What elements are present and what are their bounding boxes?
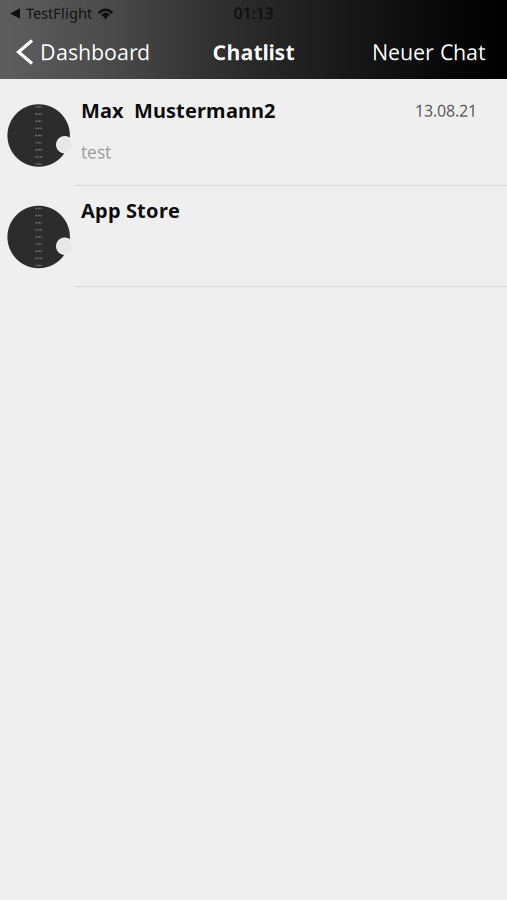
staticText: Neuer Chat — [372, 38, 486, 66]
staticText: Max Mustermann2 — [81, 97, 275, 124]
staticText: Chatlist — [212, 38, 294, 66]
staticText: 01:13 — [233, 2, 273, 24]
staticText: Dashboard — [40, 38, 150, 66]
button[interactable]: Neuer Chat — [372, 25, 507, 78]
staticText: App Store — [81, 197, 180, 224]
staticText: test — [81, 140, 111, 163]
button[interactable]: Dashboard — [0, 25, 150, 78]
button[interactable]: Max Mustermann2 — [0, 79, 507, 186]
staticText: TestFlight — [26, 3, 92, 23]
button[interactable]: App Store — [0, 186, 507, 287]
staticText: 13.08.21 — [415, 100, 477, 121]
